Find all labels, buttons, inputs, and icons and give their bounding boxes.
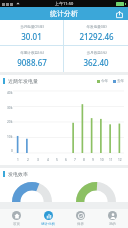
staticText: 9 — [92, 158, 94, 162]
button[interactable]: 首页 — [0, 209, 32, 228]
button[interactable] — [76, 182, 116, 202]
staticText: 20k — [7, 120, 13, 124]
staticText: 6 — [65, 158, 67, 162]
staticText: 30.01 — [21, 31, 42, 42]
staticText: 2 — [27, 158, 29, 162]
staticText: 5 — [56, 158, 58, 162]
button[interactable]: 保养 — [64, 209, 96, 228]
staticText: 我的 — [109, 222, 116, 226]
button[interactable]: 我的 — [96, 209, 128, 228]
staticText: 统计分析 — [50, 9, 78, 18]
button[interactable]: 年发电量(度) — [64, 20, 128, 45]
staticText: 年累计收益(元) — [20, 50, 44, 55]
staticText: 7 — [74, 158, 76, 162]
button[interactable]: 当月收益(元) — [64, 46, 128, 72]
staticText: 9088.67 — [17, 57, 47, 68]
staticText: 年发电量(度) — [86, 24, 107, 29]
staticText: 当月收益(元) — [86, 50, 107, 55]
staticText: 保养 — [77, 222, 84, 226]
staticText: 40k — [7, 91, 13, 95]
staticText: 1 — [17, 158, 19, 162]
staticText: 12 — [118, 158, 122, 162]
button[interactable]: Share — [114, 9, 124, 19]
staticText: 统计分析 — [41, 222, 55, 226]
staticText: 0 — [11, 149, 13, 153]
staticText: 去年 — [117, 79, 125, 84]
staticText: 4 — [47, 158, 49, 162]
staticText: 今年 — [101, 79, 109, 84]
staticText: 近两年发电量 — [8, 78, 38, 84]
staticText: 3 — [37, 158, 39, 162]
staticText: 10 — [100, 158, 104, 162]
staticText: 首页 — [13, 222, 20, 226]
staticText: 当月电量(万度) — [20, 24, 44, 29]
staticText: 362.40 — [83, 57, 109, 68]
staticText: 上午11:50 — [55, 1, 74, 6]
staticText: 10k — [7, 135, 13, 139]
staticText: 30k — [7, 106, 13, 110]
staticText: 发电效率 — [8, 171, 28, 177]
button[interactable]: 统计分析 — [32, 209, 64, 228]
staticText: 11 — [109, 158, 113, 162]
button[interactable] — [12, 182, 52, 202]
button[interactable]: 年累计收益(元) — [0, 46, 63, 72]
staticText: 8 — [83, 158, 85, 162]
button[interactable]: 当月电量(万度) — [0, 20, 63, 45]
staticText: 21292.46 — [79, 31, 114, 42]
